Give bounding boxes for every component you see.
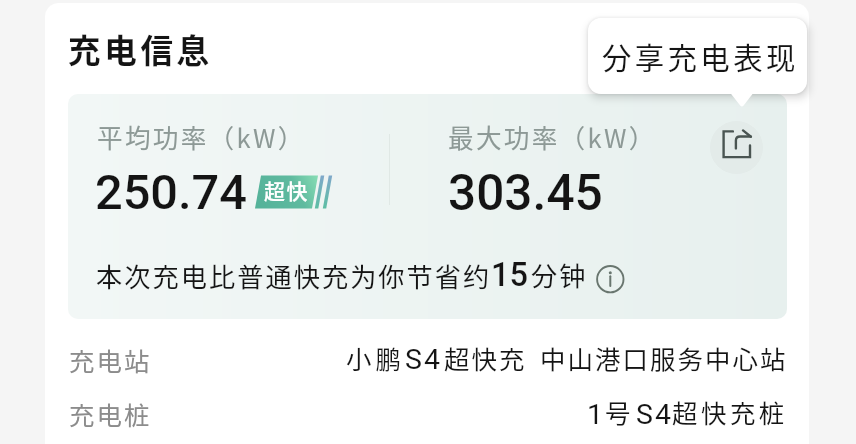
button[interactable]: 说明 — [596, 265, 625, 294]
staticText: 超快 — [264, 175, 310, 205]
button[interactable] — [588, 18, 807, 94]
staticText: 分享充电表现 — [602, 35, 799, 78]
staticText: 最大功率（kW） — [448, 118, 657, 155]
staticText: 超快充 — [444, 339, 527, 376]
staticText: 303.45 — [448, 164, 603, 222]
staticText: 分钟 — [531, 256, 588, 294]
button[interactable]: 分享充电表现 — [710, 121, 763, 174]
staticText: 超快充桩 — [672, 393, 788, 430]
staticText: 小鹏 — [346, 339, 405, 376]
staticText: 250.74 — [95, 164, 247, 221]
staticText: 充电站 — [69, 341, 152, 378]
staticText: 充电信息 — [68, 25, 213, 72]
staticText: 号 — [605, 393, 633, 430]
staticText: S4 — [636, 398, 674, 431]
staticText: 15 — [491, 256, 528, 294]
staticText: 平均功率（kW） — [97, 118, 306, 155]
staticText: 中山港口服务中心站 — [540, 339, 788, 376]
staticText: 本次充电比普通快充为你节省约 — [96, 257, 492, 295]
staticText: 1 — [587, 398, 606, 431]
staticText: S4 — [405, 343, 443, 376]
staticText: 充电桩 — [69, 395, 152, 432]
